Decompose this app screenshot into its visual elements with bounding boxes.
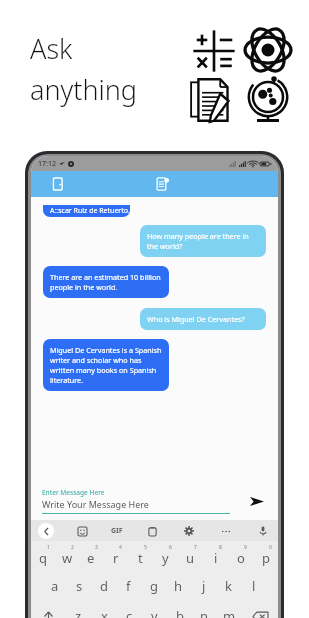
staticText: a: [51, 577, 59, 595]
staticText: 5: [144, 544, 147, 551]
button[interactable]: k: [216, 571, 241, 601]
staticText: A::scar Ruiz de Retuerto.: [50, 206, 130, 216]
staticText: 4: [119, 544, 122, 551]
staticText: Who is Miguel De Cervantes?: [147, 314, 245, 324]
button[interactable]: Who is Miguel De Cervantes?: [140, 308, 266, 330]
button[interactable]: m: [217, 601, 242, 618]
button[interactable]: j: [191, 571, 216, 601]
staticText: d: [100, 577, 108, 595]
staticText: 3: [95, 544, 98, 551]
staticText: How many people are there in the world?: [147, 231, 259, 251]
staticText: Enter Message Here: [42, 488, 105, 497]
button[interactable]: Keyboard settings: [181, 523, 197, 539]
button[interactable]: s: [67, 571, 91, 601]
staticText: Write Your Message Here: [42, 498, 149, 510]
staticText: v: [151, 607, 158, 618]
staticText: e: [87, 549, 95, 567]
staticText: 8: [219, 544, 222, 551]
staticText: 2: [71, 544, 74, 551]
staticText: n: [200, 607, 209, 618]
button[interactable]: GIF: [111, 526, 123, 536]
button[interactable]: 0: [253, 541, 278, 571]
staticText: 17:12: [38, 159, 56, 169]
button[interactable]: z: [65, 601, 91, 618]
staticText: Ask: [30, 30, 73, 67]
button[interactable]: b: [167, 601, 192, 618]
staticText: k: [225, 577, 232, 595]
staticText: GIF: [111, 526, 123, 536]
button[interactable]: Enter Message Here: [42, 488, 238, 514]
button[interactable]: h: [166, 571, 191, 601]
button[interactable]: Stickers: [74, 523, 90, 539]
staticText: y: [162, 549, 169, 567]
button[interactable]: There are an estimated 10 billion people…: [43, 266, 169, 298]
staticText: i: [214, 549, 218, 567]
staticText: c: [126, 607, 133, 618]
staticText: m: [223, 607, 236, 618]
staticText: Miguel De Cervantes is a Spanish writer …: [50, 345, 162, 385]
staticText: f: [126, 577, 131, 595]
button[interactable]: Voice input: [255, 523, 271, 539]
staticText: 7: [194, 544, 197, 551]
button[interactable]: How many people are there in the world?: [140, 225, 266, 257]
button[interactable]: x: [91, 601, 117, 618]
button[interactable]: 8: [203, 541, 228, 571]
staticText: h: [174, 577, 183, 595]
button[interactable]: Shift: [31, 601, 65, 618]
button[interactable]: Miguel De Cervantes is a Spanish writer …: [43, 339, 169, 391]
button[interactable]: Send: [246, 490, 268, 512]
button[interactable]: Notes: [153, 174, 173, 194]
button[interactable]: c: [117, 601, 142, 618]
staticText: There are an estimated 10 billion people…: [50, 272, 162, 292]
staticText: g: [150, 577, 158, 595]
staticText: p: [262, 549, 270, 567]
button[interactable]: Clipboard: [144, 523, 160, 539]
button[interactable]: 9: [228, 541, 253, 571]
staticText: w: [62, 549, 73, 567]
staticText: z: [75, 607, 82, 618]
button[interactable]: d: [91, 571, 116, 601]
button[interactable]: 2: [55, 541, 79, 571]
button[interactable]: More options: [218, 523, 234, 539]
staticText: 1: [47, 544, 50, 551]
button[interactable]: 4: [103, 541, 128, 571]
button[interactable]: l: [241, 571, 266, 601]
staticText: 6: [169, 544, 172, 551]
button[interactable]: Back: [38, 523, 54, 539]
button[interactable]: v: [142, 601, 167, 618]
button[interactable]: n: [192, 601, 217, 618]
button[interactable]: 7: [178, 541, 203, 571]
button[interactable]: 5: [128, 541, 153, 571]
button[interactable]: g: [141, 571, 166, 601]
staticText: u: [186, 549, 195, 567]
staticText: o: [237, 549, 245, 567]
staticText: r: [113, 549, 119, 567]
button[interactable]: Backspace: [242, 601, 278, 618]
staticText: l: [252, 577, 256, 595]
staticText: 0: [269, 544, 272, 551]
staticText: anything: [30, 71, 137, 108]
button[interactable]: A::scar Ruiz de Retuerto.: [43, 205, 130, 217]
staticText: 9: [244, 544, 247, 551]
button[interactable]: f: [116, 571, 141, 601]
button[interactable]: a: [43, 571, 67, 601]
staticText: t: [138, 549, 143, 567]
button[interactable]: 3: [79, 541, 103, 571]
button[interactable]: Open menu: [49, 175, 67, 193]
staticText: j: [202, 577, 206, 595]
staticText: q: [39, 549, 47, 567]
staticText: x: [101, 607, 108, 618]
staticText: s: [76, 577, 83, 595]
button[interactable]: 6: [153, 541, 178, 571]
staticText: b: [176, 607, 184, 618]
button[interactable]: 1: [31, 541, 55, 571]
